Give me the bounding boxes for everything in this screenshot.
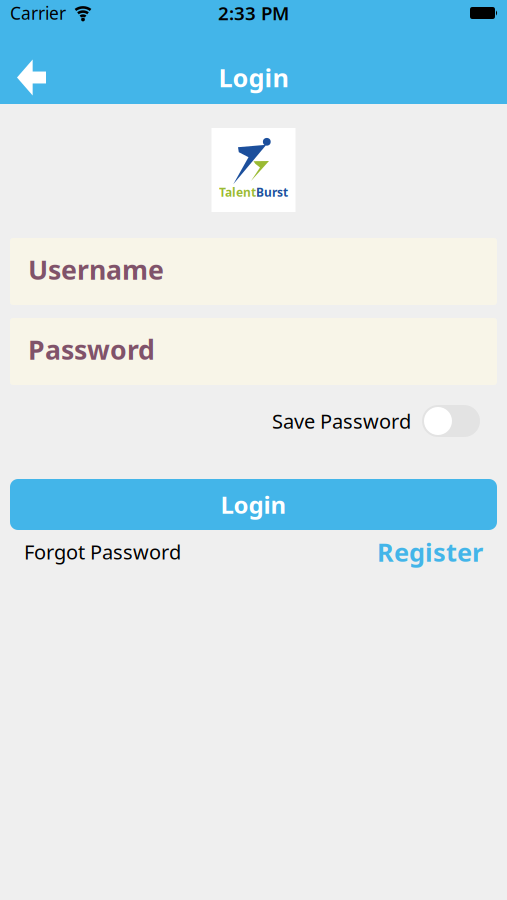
staticText: Forgot Password <box>24 538 181 565</box>
staticText: Login <box>220 489 286 520</box>
button[interactable]: Username <box>10 238 497 305</box>
staticText: Register <box>377 535 483 569</box>
button[interactable]: Save Password <box>422 405 480 437</box>
staticText: Save Password <box>272 408 411 434</box>
button[interactable]: Login <box>10 479 497 530</box>
staticText: Password <box>28 332 155 367</box>
button[interactable]: Register <box>377 535 483 569</box>
button[interactable]: Forgot Password <box>24 538 181 565</box>
button[interactable]: Password <box>10 318 497 385</box>
staticText: Login <box>218 61 288 94</box>
staticText: Carrier <box>10 1 66 24</box>
staticText: Burst <box>256 184 288 200</box>
staticText: Username <box>28 252 164 287</box>
button[interactable]: Back <box>17 59 46 95</box>
staticText: Talent <box>219 184 256 200</box>
staticText: 2:33 PM <box>218 1 289 25</box>
